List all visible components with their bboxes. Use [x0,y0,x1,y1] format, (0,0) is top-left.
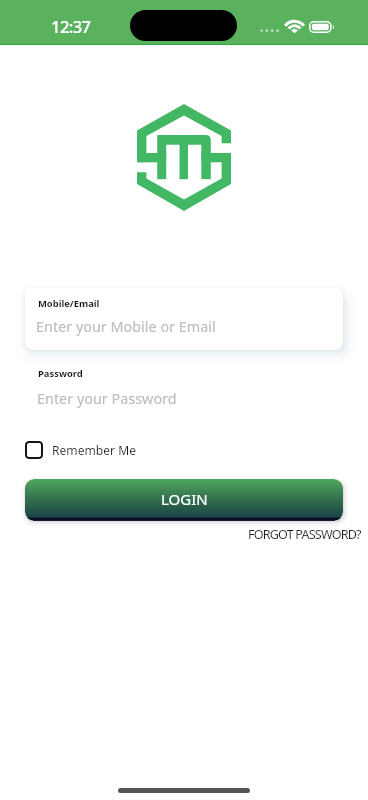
staticText: Enter your Password [37,389,177,409]
staticText: LOGIN [161,489,208,509]
staticText: FORGOT PASSWORD? [248,526,361,543]
button[interactable]: FORGOT PASSWORD? [242,524,367,545]
staticText: Remember Me [52,442,136,458]
button[interactable]: Remember Me [25,437,136,462]
staticText: Password [38,367,83,380]
button[interactable]: Mobile/Email [25,288,343,350]
button[interactable]: LOGIN [25,479,343,521]
staticText: Mobile/Email [38,297,100,310]
button[interactable]: Password [25,358,343,420]
staticText: 12:37 [51,15,91,38]
staticText: Enter your Mobile or Email [36,317,216,337]
